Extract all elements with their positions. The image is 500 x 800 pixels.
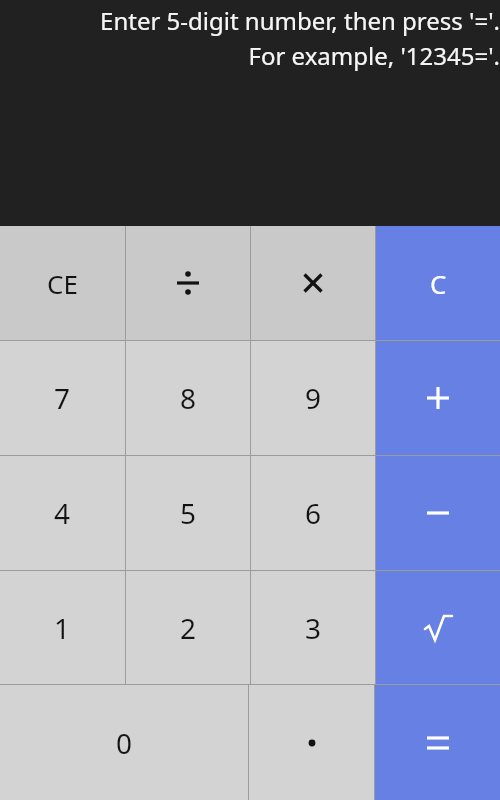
staticText: 0 [116, 724, 133, 762]
staticText: 2 [180, 609, 197, 647]
button[interactable]: Plus [376, 341, 500, 455]
button[interactable]: 9 [251, 341, 375, 455]
staticText: 8 [180, 379, 197, 417]
button[interactable]: 6 [251, 456, 375, 570]
staticText: 1 [54, 609, 71, 647]
button[interactable]: C [376, 226, 500, 340]
staticText: 4 [54, 494, 71, 532]
button[interactable]: Minus [376, 456, 500, 570]
button[interactable]: 7 [0, 341, 125, 455]
button[interactable]: Multiply [251, 226, 375, 340]
button[interactable]: 2 [126, 571, 250, 684]
button[interactable]: 1 [0, 571, 125, 684]
button[interactable]: Square root [376, 571, 500, 684]
staticText: 3 [305, 609, 322, 647]
staticText: 5 [180, 494, 197, 532]
button[interactable]: Decimal point [249, 685, 374, 800]
button[interactable]: 0 [0, 685, 248, 800]
staticText: 7 [54, 379, 71, 417]
staticText: 6 [305, 494, 322, 532]
button[interactable]: 4 [0, 456, 125, 570]
staticText: Enter 5-digit number, then press '='. Fo… [0, 4, 500, 72]
button[interactable]: 3 [251, 571, 375, 684]
button[interactable]: 8 [126, 341, 250, 455]
button[interactable]: CE [0, 226, 125, 340]
staticText: 9 [305, 379, 322, 417]
button[interactable]: Divide [126, 226, 250, 340]
staticText: C [430, 266, 447, 301]
button[interactable]: Equals [375, 685, 500, 800]
button[interactable]: 5 [126, 456, 250, 570]
staticText: CE [47, 266, 78, 301]
